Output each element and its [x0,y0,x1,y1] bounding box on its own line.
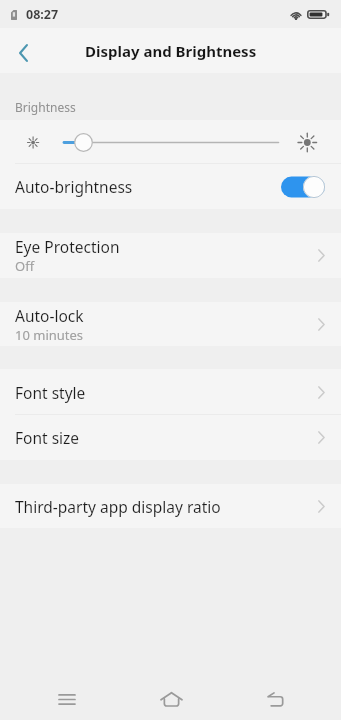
staticText: Display and Brightness [85,41,257,61]
button[interactable]: Auto-brightness toggle [281,176,325,198]
staticText: Eye Protection [15,236,120,257]
staticText: Third-party app display ratio [15,496,221,517]
button[interactable]: Eye Protection [0,233,341,278]
button[interactable]: Third-party app display ratio [0,484,341,528]
button[interactable]: Brightness slider [0,120,341,164]
staticText: Brightness [15,99,76,115]
button[interactable]: Auto-lock [0,302,341,346]
staticText: Auto-brightness [15,176,133,197]
button[interactable]: Font size [0,415,341,460]
staticText: Font style [15,382,86,403]
button[interactable]: Back [0,28,46,73]
staticText: Font size [15,427,80,448]
staticText: Off [15,257,35,275]
button[interactable]: Recent apps [44,678,90,720]
button[interactable]: Back [252,677,298,720]
staticText: Auto-lock [15,305,84,326]
staticText: 08:27 [26,6,59,23]
button[interactable]: Font style [0,369,341,415]
staticText: 10 minutes [15,326,84,344]
button[interactable]: Home [148,678,194,720]
button[interactable]: Auto-brightness [0,164,341,209]
